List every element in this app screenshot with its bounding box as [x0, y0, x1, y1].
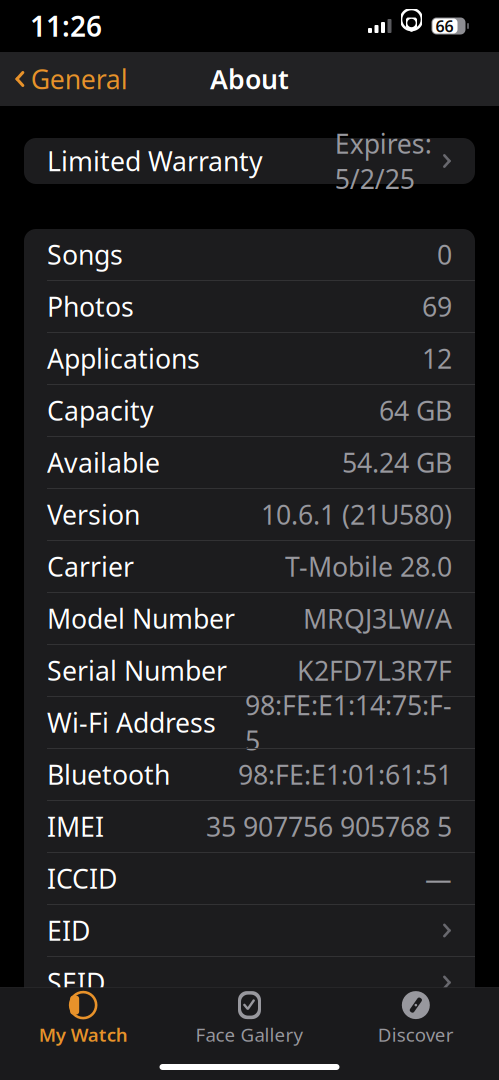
- staticText: 0: [437, 237, 452, 272]
- staticText: IMEI: [47, 809, 104, 844]
- button[interactable]: General: [0, 53, 128, 105]
- staticText: 11:26: [30, 7, 102, 45]
- staticText: Version: [47, 497, 140, 532]
- button[interactable]: IMEI: [24, 801, 475, 852]
- staticText: 12: [422, 341, 452, 376]
- button[interactable]: Wi-Fi Address: [24, 697, 475, 748]
- staticText: MRQJ3LW/A: [303, 601, 452, 636]
- staticText: Serial Number: [47, 653, 227, 688]
- button[interactable]: Applications: [24, 333, 475, 384]
- staticText: Capacity: [47, 393, 154, 428]
- button[interactable]: Photos: [24, 281, 475, 332]
- staticText: Photos: [47, 289, 134, 324]
- staticText: Model Number: [47, 601, 235, 636]
- staticText: Face Gallery: [195, 1022, 303, 1047]
- staticText: EID: [47, 913, 90, 948]
- staticText: General: [31, 61, 128, 97]
- staticText: 98:FE:E1:14:75:F5: [245, 687, 452, 758]
- staticText: 66: [435, 15, 453, 37]
- staticText: My Watch: [39, 1022, 128, 1047]
- button[interactable]: Carrier: [24, 541, 475, 592]
- button[interactable]: Songs: [24, 229, 475, 280]
- staticText: 98:FE:E1:01:61:51: [238, 757, 452, 792]
- button[interactable]: Capacity: [24, 385, 475, 436]
- staticText: K2FD7L3R7F: [297, 653, 452, 688]
- staticText: Songs: [47, 237, 123, 272]
- staticText: SEID: [47, 965, 105, 1000]
- button[interactable]: SEID: [24, 957, 475, 1008]
- button[interactable]: Available: [24, 437, 475, 488]
- staticText: Wi-Fi Address: [47, 705, 216, 740]
- button[interactable]: Model Number: [24, 593, 475, 644]
- button[interactable]: Bluetooth: [24, 749, 475, 800]
- button[interactable]: Serial Number: [24, 645, 475, 696]
- button[interactable]: Version: [24, 489, 475, 540]
- staticText: 54.24 GB: [342, 445, 452, 480]
- button[interactable]: Discover: [333, 984, 499, 1052]
- staticText: Discover: [378, 1022, 454, 1047]
- staticText: Applications: [47, 341, 200, 376]
- staticText: Carrier: [47, 549, 134, 584]
- staticText: Expires: 5/2/25: [335, 126, 432, 196]
- button[interactable]: EID: [24, 905, 475, 956]
- staticText: ICCID: [47, 861, 117, 896]
- button[interactable]: Face Gallery: [166, 984, 333, 1052]
- staticText: Available: [47, 445, 160, 480]
- staticText: Limited Warranty: [47, 143, 263, 179]
- staticText: 10.6.1 (21U580): [261, 497, 452, 532]
- staticText: Bluetooth: [47, 757, 170, 792]
- staticText: 64 GB: [379, 393, 452, 428]
- staticText: 35 907756 905768 5: [206, 809, 452, 844]
- staticText: —: [425, 861, 452, 896]
- staticText: T-Mobile 28.0: [285, 549, 452, 584]
- button[interactable]: My Watch: [0, 984, 166, 1052]
- button[interactable]: ICCID: [24, 853, 475, 904]
- staticText: 69: [422, 289, 452, 324]
- button[interactable]: Limited Warranty: [24, 138, 475, 184]
- staticText: About: [210, 61, 289, 97]
